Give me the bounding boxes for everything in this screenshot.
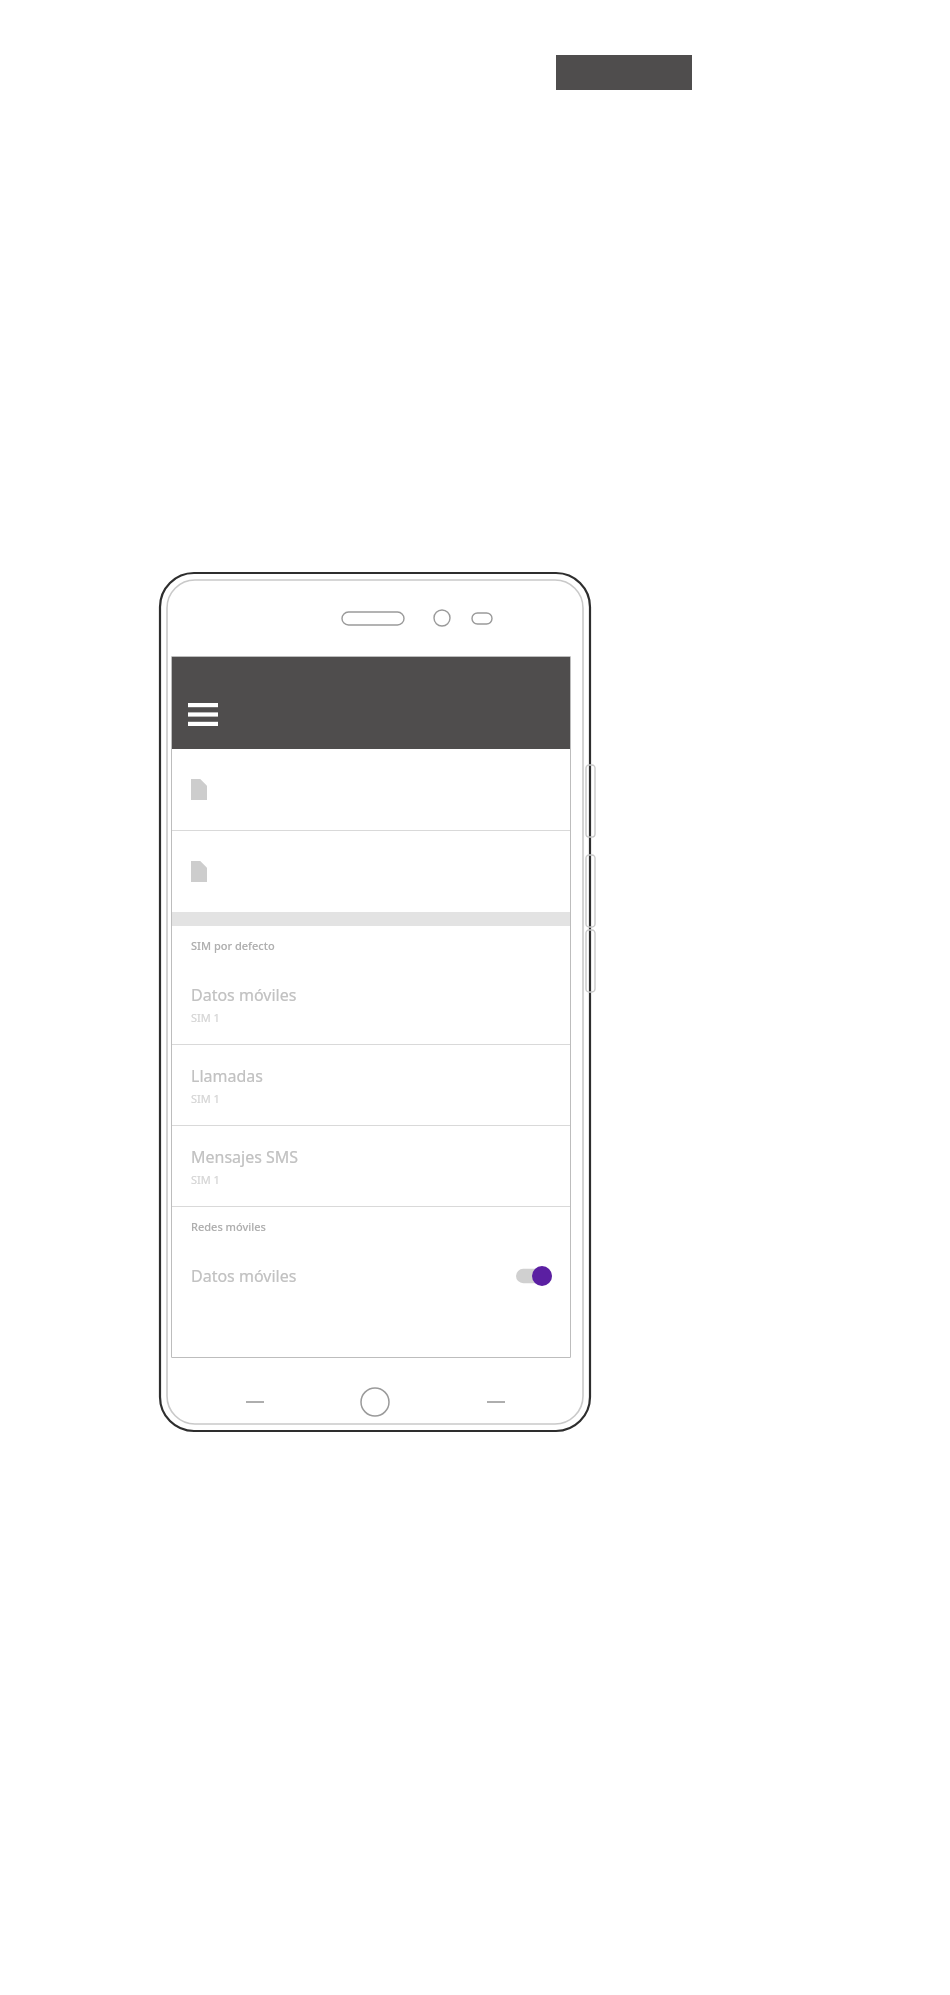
button[interactable]: Datos móviles <box>172 964 570 1044</box>
button[interactable]: Llamadas <box>172 1045 570 1125</box>
staticText: Datos móviles <box>191 984 297 1006</box>
staticText: SIM 1 <box>191 1091 220 1106</box>
button[interactable]: Open navigation menu <box>182 693 224 735</box>
staticText: SIM por defecto <box>191 938 275 953</box>
staticText: SIM 1 <box>191 1010 220 1025</box>
other: Mobile data toggle, on <box>516 1266 552 1286</box>
button[interactable]: Mensajes SMS <box>172 1126 570 1206</box>
other: Document <box>191 779 207 800</box>
staticText: Datos móviles <box>191 1265 516 1287</box>
button[interactable]: Document <box>172 749 570 830</box>
button[interactable]: Document <box>172 831 570 912</box>
staticText: Redes móviles <box>191 1219 266 1234</box>
button[interactable]: Datos móviles <box>172 1245 570 1307</box>
staticText: SIM 1 <box>191 1172 220 1187</box>
staticText: Mensajes SMS <box>191 1146 299 1168</box>
other: Document <box>191 861 207 882</box>
staticText: Llamadas <box>191 1065 263 1087</box>
